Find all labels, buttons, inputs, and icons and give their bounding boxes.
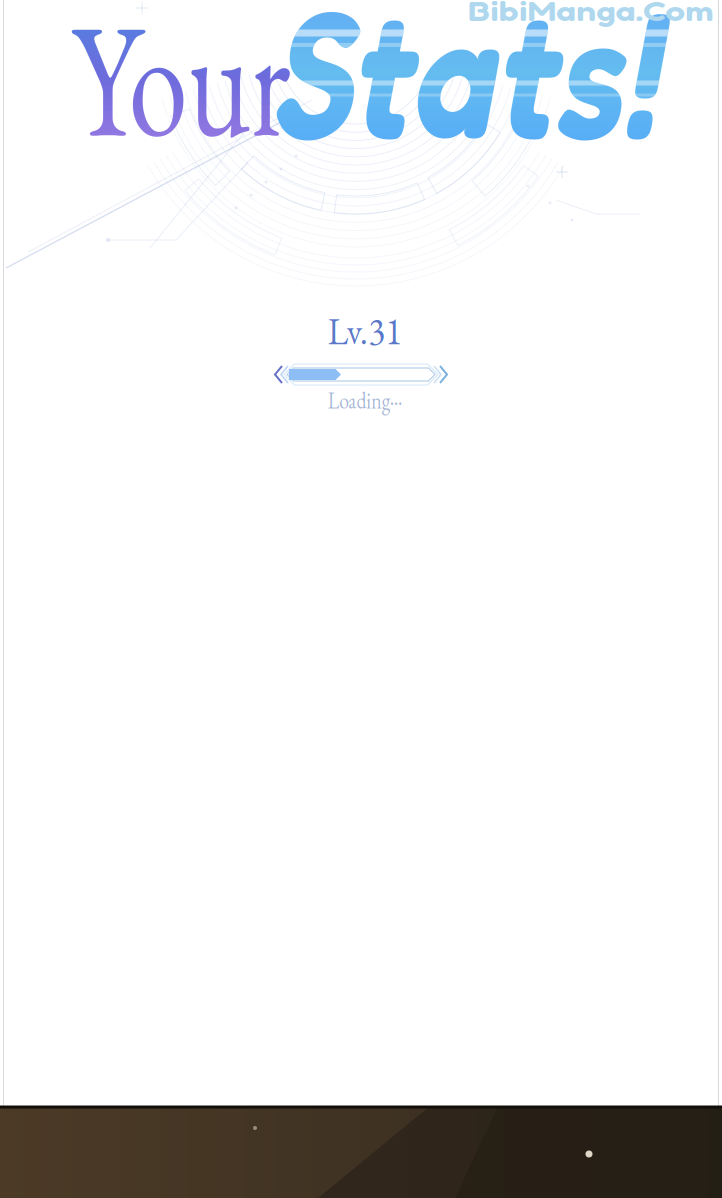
staticText: BibiManga.Com — [475, 0, 707, 31]
staticText: Loading⋯ — [319, 384, 410, 416]
staticText: Lv.31 — [325, 307, 404, 355]
